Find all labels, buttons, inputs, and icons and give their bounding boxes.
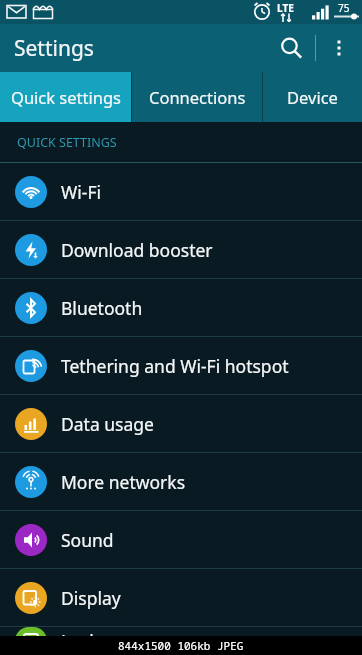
staticText: Download booster [61, 238, 213, 262]
staticText: Device [287, 86, 338, 108]
button[interactable]: Bluetooth [0, 279, 362, 336]
button[interactable]: Display [0, 569, 362, 626]
staticText: Bluetooth [61, 296, 143, 320]
button[interactable]: Tethering and Wi-Fi hotspot [0, 337, 362, 394]
staticText: More networks [61, 470, 186, 494]
staticText: QUICK SETTINGS [17, 134, 117, 151]
staticText: Data usage [61, 412, 154, 436]
button[interactable]: More networks [0, 453, 362, 510]
staticText: LTE [277, 1, 294, 15]
staticText: Lock screen [61, 629, 158, 653]
button[interactable]: Search [267, 24, 315, 72]
staticText: Wi-Fi [61, 180, 102, 204]
button[interactable]: Wi-Fi [0, 163, 362, 220]
button[interactable]: Data usage [0, 395, 362, 452]
button[interactable]: Lock screen [0, 627, 362, 655]
button[interactable]: Download booster [0, 221, 362, 278]
button[interactable]: Sound [0, 511, 362, 568]
staticText: Quick settings [11, 86, 121, 108]
button[interactable]: Quick settings [0, 72, 131, 122]
staticText: Tethering and Wi-Fi hotspot [61, 354, 289, 378]
staticText: Settings [14, 34, 94, 63]
staticText: Connections [149, 86, 246, 108]
button[interactable]: Connections [132, 72, 262, 122]
staticText: Display [61, 586, 121, 610]
staticText: Sound [61, 528, 114, 552]
button[interactable]: More options [316, 25, 362, 71]
staticText: 75 [338, 1, 350, 15]
button[interactable]: Device [263, 72, 362, 122]
staticText: 844x1500 106kb JPEG [118, 638, 244, 653]
